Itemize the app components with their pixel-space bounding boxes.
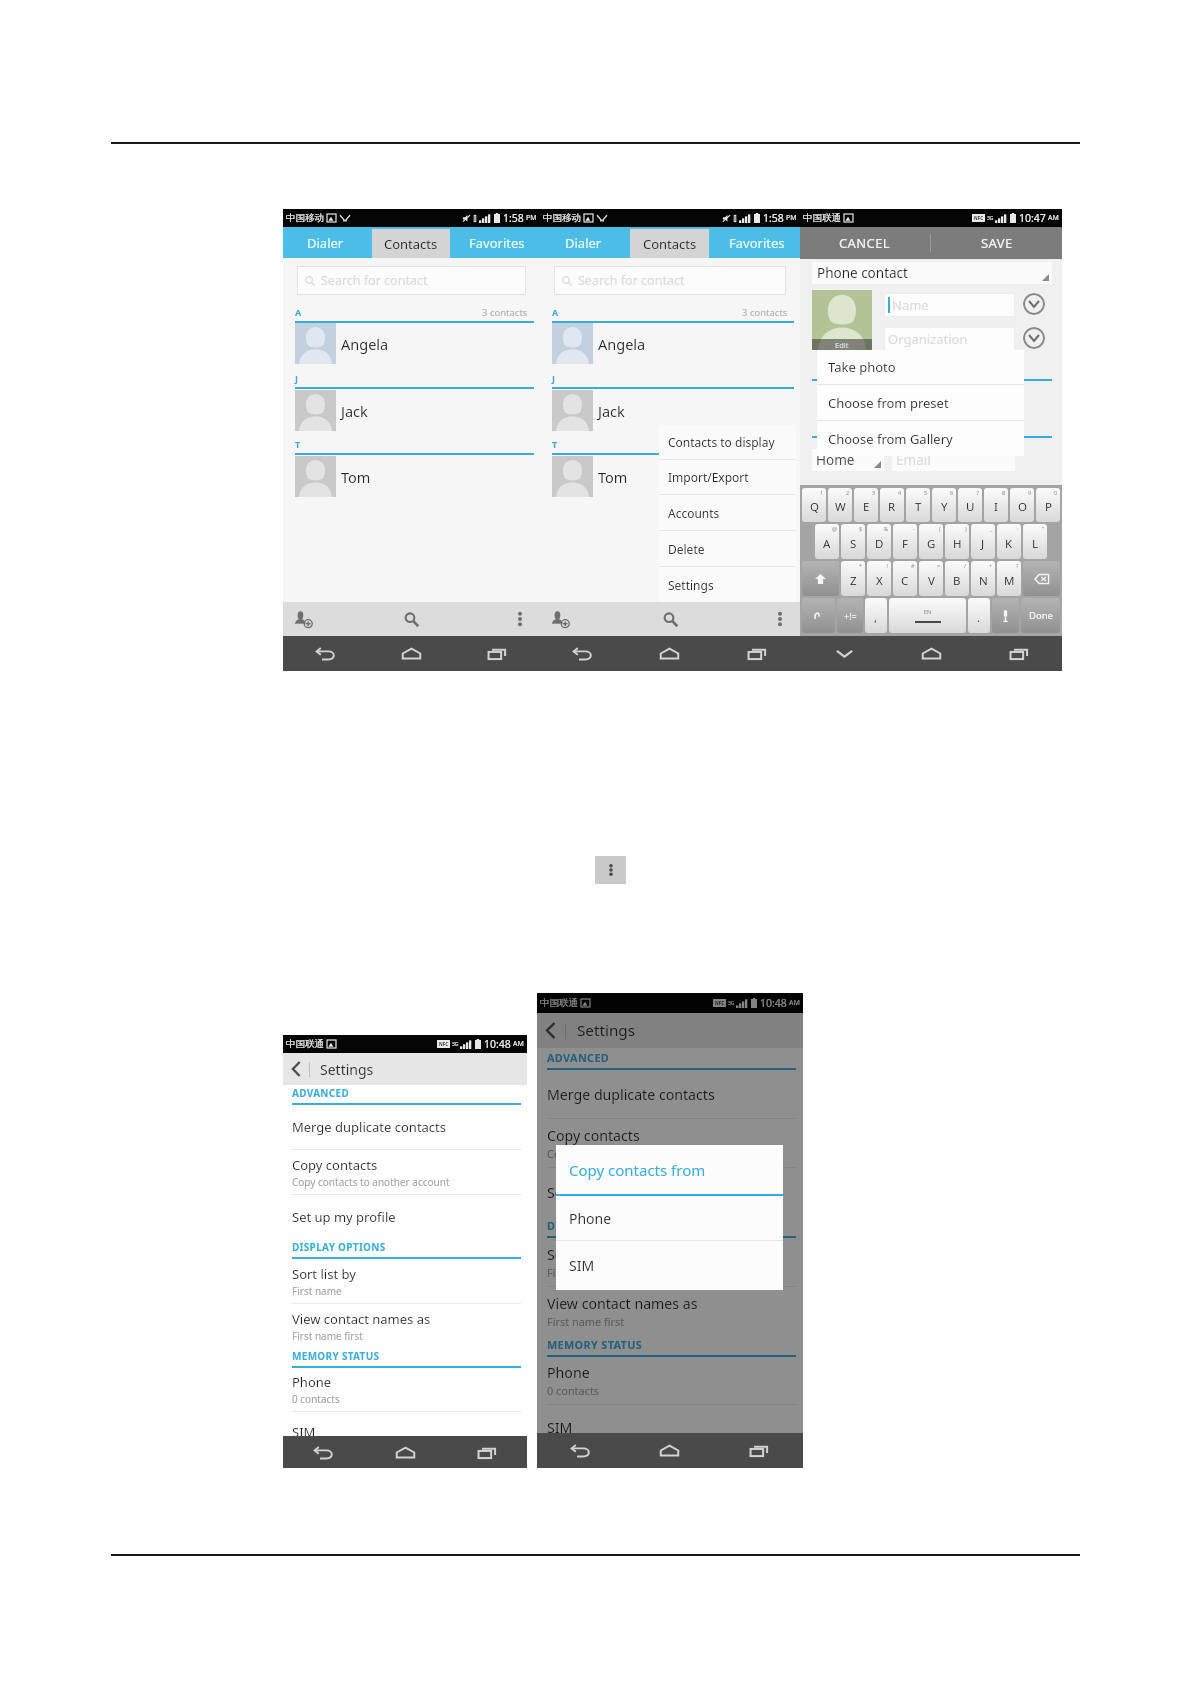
button[interactable]: Tom <box>295 456 371 497</box>
button[interactable]: More options <box>760 602 800 636</box>
button[interactable]: Copy contacts <box>537 1119 803 1167</box>
button[interactable]: SIM <box>537 1405 803 1449</box>
button[interactable]: ! <box>867 561 891 596</box>
button[interactable]: Favorites <box>713 227 800 258</box>
button[interactable]: Settings <box>659 567 796 602</box>
button[interactable]: ) <box>945 524 969 559</box>
button[interactable]: Home <box>626 636 713 671</box>
button[interactable]: 6 <box>932 488 956 522</box>
button[interactable]: SIM <box>283 1412 527 1452</box>
button[interactable]: Phone <box>537 1357 803 1404</box>
button[interactable]: SIM <box>556 1241 783 1290</box>
button[interactable]: Expand <box>1023 327 1045 349</box>
button[interactable]: Email <box>892 449 1015 471</box>
button[interactable]: Back <box>283 636 368 671</box>
button[interactable]: Add contact <box>540 602 580 636</box>
button[interactable]: CANCEL <box>800 227 930 259</box>
button[interactable]: Take photo <box>817 350 1024 384</box>
button[interactable]: Recents <box>713 636 800 671</box>
button[interactable]: 1 <box>802 488 826 522</box>
button[interactable]: Home <box>365 1436 446 1468</box>
button[interactable]: : <box>997 524 1021 559</box>
button[interactable]: 9 <box>1010 488 1034 522</box>
button[interactable]: Back <box>540 636 626 671</box>
button[interactable]: Set up my profile <box>283 1195 527 1239</box>
button[interactable]: / <box>945 561 969 596</box>
button[interactable]: Hide keyboard <box>800 636 888 671</box>
button[interactable]: Home <box>368 636 454 671</box>
button[interactable]: $ <box>841 524 865 559</box>
button[interactable]: View contact names as <box>283 1304 527 1348</box>
button[interactable]: Handwriting <box>802 598 835 633</box>
button[interactable]: SAVE <box>931 227 1062 259</box>
button[interactable]: Search <box>580 602 760 636</box>
button[interactable]: Back <box>537 1433 625 1468</box>
button[interactable]: 0 <box>1036 488 1060 522</box>
button[interactable]: Back <box>283 1053 309 1085</box>
button[interactable]: , <box>865 598 887 633</box>
button[interactable]: Home <box>625 1433 714 1468</box>
button[interactable]: Done <box>1021 598 1060 633</box>
button[interactable]: Name <box>884 293 1015 317</box>
button[interactable]: Space <box>889 598 966 633</box>
button[interactable]: Home <box>812 449 884 471</box>
button[interactable]: Dialer <box>283 227 368 258</box>
button[interactable]: Back <box>283 1436 365 1468</box>
button[interactable]: Contacts <box>630 229 709 258</box>
button[interactable]: @ <box>815 524 839 559</box>
button[interactable]: Organization <box>884 327 1015 351</box>
button[interactable]: Shift <box>802 561 839 596</box>
button[interactable]: Recents <box>714 1433 803 1468</box>
button[interactable]: View contact names as <box>537 1287 803 1335</box>
button[interactable]: Recents <box>454 636 540 671</box>
button[interactable]: " <box>1023 524 1047 559</box>
button[interactable]: ( <box>919 524 943 559</box>
button[interactable]: Jack <box>552 390 625 431</box>
button[interactable]: +!= <box>837 598 863 633</box>
button[interactable]: Dialer <box>540 227 626 258</box>
button[interactable]: 4 <box>880 488 904 522</box>
button[interactable]: Search <box>323 602 500 636</box>
button[interactable]: More options <box>500 602 540 636</box>
button[interactable]: More options <box>595 856 626 884</box>
button[interactable]: Choose from preset <box>817 385 1024 420</box>
button[interactable]: Tom <box>552 456 628 497</box>
button[interactable]: Angela <box>295 323 389 364</box>
button[interactable]: 2 <box>828 488 852 522</box>
button[interactable]: Sort list by <box>283 1259 527 1303</box>
button[interactable]: Choose from Gallery <box>817 421 1024 456</box>
button[interactable]: Search for contact <box>554 266 786 295</box>
button[interactable]: 8 <box>984 488 1008 522</box>
button[interactable]: Jack <box>295 390 368 431</box>
button[interactable]: Set up my profile <box>537 1168 803 1216</box>
button[interactable]: Expand <box>1023 293 1045 315</box>
button[interactable]: Copy contacts <box>283 1150 527 1194</box>
button[interactable]: Add contact <box>283 602 323 636</box>
button[interactable]: Edit photo <box>812 290 872 350</box>
button[interactable]: Favorites <box>454 227 540 258</box>
button[interactable]: Sort list by <box>537 1238 803 1286</box>
button[interactable]: Angela <box>552 323 646 364</box>
button[interactable]: # <box>893 561 917 596</box>
button[interactable]: * <box>841 561 865 596</box>
button[interactable]: Recents <box>975 636 1062 671</box>
button[interactable]: Search for contact <box>297 266 526 295</box>
button[interactable]: . <box>968 598 990 633</box>
button[interactable]: Merge duplicate contacts <box>537 1070 803 1118</box>
button[interactable]: Voice input <box>992 598 1019 633</box>
button[interactable]: ? <box>997 561 1021 596</box>
button[interactable]: 5 <box>906 488 930 522</box>
button[interactable]: & <box>867 524 891 559</box>
button[interactable]: + <box>971 561 995 596</box>
button[interactable]: Phone contact <box>812 262 1052 284</box>
button[interactable]: _ <box>971 524 995 559</box>
button[interactable]: Contacts to display <box>659 425 796 459</box>
button[interactable]: Phone <box>283 1368 527 1411</box>
button[interactable]: Accounts <box>659 495 796 530</box>
button[interactable]: Delete <box>659 531 796 566</box>
button[interactable]: Home <box>888 636 975 671</box>
button[interactable]: Phone <box>556 1196 783 1240</box>
button[interactable]: - <box>893 524 917 559</box>
button[interactable]: = <box>919 561 943 596</box>
button[interactable]: 7 <box>958 488 982 522</box>
